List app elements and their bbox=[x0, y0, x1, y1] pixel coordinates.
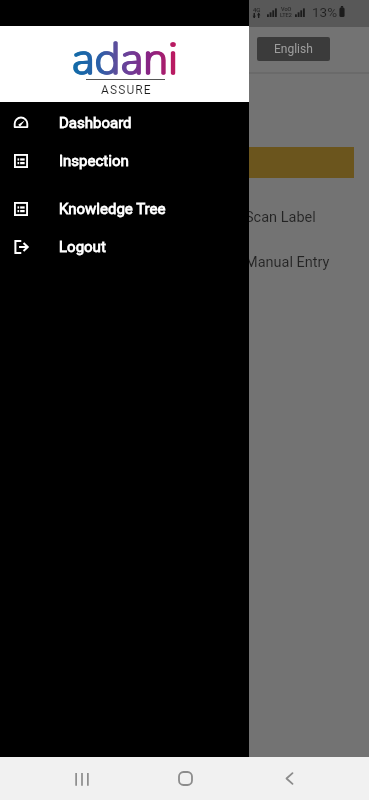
staticText: Inspection bbox=[59, 152, 129, 170]
button[interactable] bbox=[16, 147, 354, 178]
button[interactable]: Back bbox=[265, 757, 313, 800]
staticText: Manual Entry bbox=[245, 254, 330, 271]
staticText: Knowledge Tree bbox=[59, 200, 166, 218]
staticText: Logout bbox=[59, 238, 106, 256]
staticText: 4G bbox=[253, 6, 261, 13]
staticText: adani bbox=[72, 29, 179, 90]
staticText: English bbox=[274, 42, 313, 56]
button[interactable]: Home bbox=[161, 757, 209, 800]
button[interactable]: Knowledge Tree bbox=[0, 190, 249, 228]
button[interactable]: Dashboard bbox=[0, 104, 249, 142]
staticText: ASSURE bbox=[101, 83, 152, 97]
button[interactable]: English bbox=[257, 37, 330, 61]
staticText: Scan Label bbox=[245, 209, 316, 226]
button[interactable]: Inspection bbox=[0, 142, 249, 180]
staticText: LTE2 bbox=[280, 12, 292, 18]
staticText: Dashboard bbox=[59, 114, 132, 132]
button[interactable]: Recent apps bbox=[56, 757, 104, 800]
staticText: 13% bbox=[312, 4, 338, 20]
staticText: adani bbox=[71, 29, 178, 90]
staticText: VoO bbox=[281, 6, 292, 12]
button[interactable]: Logout bbox=[0, 228, 249, 266]
